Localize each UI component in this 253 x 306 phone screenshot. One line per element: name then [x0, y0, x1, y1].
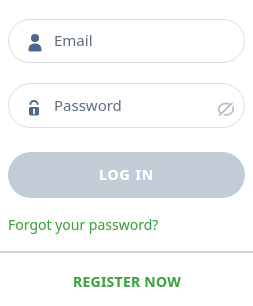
- button[interactable]: Email: [8, 19, 245, 63]
- button[interactable]: Forgot your password?: [8, 214, 159, 234]
- button[interactable]: Password: [8, 83, 245, 128]
- staticText: LOG IN: [99, 165, 155, 184]
- staticText: Password: [54, 95, 122, 115]
- staticText: REGISTER NOW: [73, 272, 181, 291]
- staticText: Email: [54, 30, 93, 50]
- staticText: Forgot your password?: [8, 215, 159, 234]
- button[interactable]: LOG IN: [8, 152, 245, 198]
- button[interactable]: REGISTER NOW: [0, 271, 253, 291]
- button[interactable]: [218, 102, 234, 116]
